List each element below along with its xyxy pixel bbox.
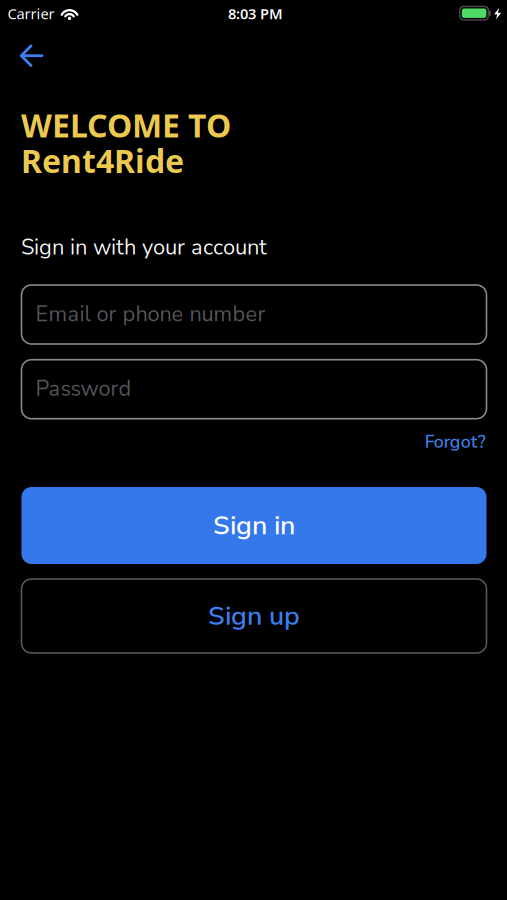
button[interactable]: Forgot? — [425, 430, 486, 454]
staticText: Password — [35, 374, 131, 403]
button[interactable]: Back — [13, 38, 49, 74]
button[interactable]: Sign in — [21, 487, 486, 564]
staticText: Sign in — [213, 507, 295, 544]
staticText: WELCOME TO — [21, 104, 231, 146]
staticText: Sign in with your account — [21, 232, 267, 262]
staticText: Sign up — [208, 598, 300, 634]
staticText: Forgot? — [425, 430, 486, 454]
staticText: Rent4Ride — [21, 139, 184, 182]
button[interactable]: Sign up — [21, 579, 486, 653]
staticText: Email or phone number — [35, 299, 265, 329]
staticText: Carrier — [7, 4, 54, 23]
staticText: 8:03 PM — [228, 4, 283, 23]
